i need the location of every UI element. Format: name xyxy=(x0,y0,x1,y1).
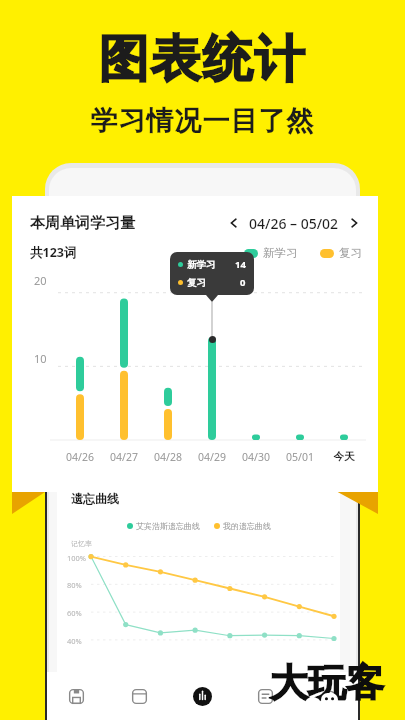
staticText: 遗忘曲线 xyxy=(71,491,119,506)
staticText: 04/28 xyxy=(146,450,190,464)
staticText: 40% xyxy=(67,636,82,646)
staticText: 新学习 xyxy=(263,246,298,260)
staticText: 05/01 xyxy=(278,450,322,464)
staticText: 复习 xyxy=(187,277,206,289)
staticText: 10 xyxy=(34,351,47,366)
staticText: 0 xyxy=(240,276,246,289)
staticText: 大玩客 xyxy=(270,659,384,707)
staticText: 04/26 xyxy=(58,450,102,464)
staticText: 复习 xyxy=(339,246,362,260)
staticText: 20 xyxy=(34,273,47,288)
staticText: 新学习 xyxy=(187,259,216,271)
staticText: 80% xyxy=(67,580,82,590)
button[interactable]: Profile xyxy=(297,672,360,720)
staticText: 60% xyxy=(67,608,82,618)
button[interactable]: Previous week xyxy=(222,211,246,235)
button[interactable]: Next week xyxy=(342,211,366,235)
staticText: 学习情况一目了然 xyxy=(0,104,405,138)
staticText: 今天 xyxy=(322,450,366,463)
staticText: 艾宾浩斯遗忘曲线 xyxy=(136,521,200,531)
staticText: 04/27 xyxy=(102,450,146,464)
button[interactable]: Notes xyxy=(234,672,297,720)
staticText: 我的遗忘曲线 xyxy=(223,521,271,531)
button[interactable]: Statistics xyxy=(171,672,234,720)
staticText: 共123词 xyxy=(30,244,77,261)
staticText: 04/29 xyxy=(190,450,234,464)
staticText: 本周单词学习量 xyxy=(30,214,135,233)
staticText: 04/30 xyxy=(234,450,278,464)
button[interactable]: Word book xyxy=(45,672,108,720)
staticText: 14 xyxy=(235,258,246,271)
button[interactable]: Cards xyxy=(108,672,171,720)
staticText: 记忆率 xyxy=(71,539,92,548)
staticText: 04/26 – 05/02 xyxy=(249,214,339,233)
staticText: 图表统计 xyxy=(0,28,405,91)
staticText: 100% xyxy=(67,553,87,563)
